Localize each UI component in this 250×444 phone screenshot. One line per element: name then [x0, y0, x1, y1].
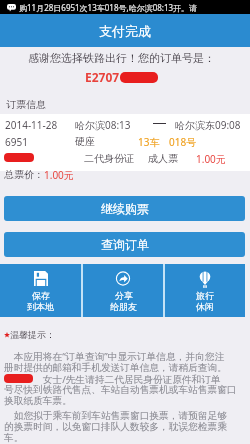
- staticText: 分享: [115, 290, 133, 301]
- staticText: 订票信息: [6, 98, 46, 111]
- staticText: 哈尔滨东09:08: [175, 118, 241, 132]
- staticText: 018号: [169, 135, 197, 149]
- staticText: 休闲: [196, 301, 214, 312]
- staticText: 本应用将在“订单查询”中显示订单信息，并向您注 册时提供的邮箱和手机发送订单信息…: [4, 350, 248, 407]
- staticText: 继续购票: [101, 201, 149, 216]
- staticText: 哈尔滨08:13: [75, 118, 131, 132]
- staticText: 硬座: [75, 135, 95, 148]
- staticText: 成人票: [148, 152, 178, 165]
- staticText: 购11月28日6951次13车018号,哈尔滨08:13开。请: [19, 2, 198, 13]
- staticText: E2707: [85, 69, 120, 85]
- staticText: 13车: [138, 135, 160, 149]
- staticText: 到本地: [27, 301, 54, 312]
- button[interactable]: 保存到本地: [0, 264, 81, 317]
- staticText: 查询订单: [101, 237, 149, 252]
- staticText: 1.00元: [44, 168, 74, 182]
- staticText: 1.00元: [196, 152, 226, 166]
- staticText: 温馨提示：: [10, 329, 55, 340]
- staticText: 如您拟于乘车前到车站售票窗口换票，请预留足够 的换票时间，以免窗口排队人数较多，…: [4, 409, 248, 444]
- staticText: 总票价：: [4, 168, 44, 181]
- button[interactable]: 继续购票: [4, 196, 245, 221]
- staticText: 感谢您选择铁路出行！您的订单号是：: [28, 51, 215, 65]
- staticText: 6951: [5, 135, 28, 149]
- button[interactable]: 旅行休闲: [165, 264, 245, 317]
- staticText: 2014-11-28: [5, 118, 58, 132]
- staticText: 旅行: [196, 290, 214, 301]
- button[interactable]: 查询订单: [4, 232, 245, 257]
- staticText: 给朋友: [110, 301, 137, 312]
- staticText: 支付完成: [99, 23, 151, 39]
- staticText: 保存: [32, 290, 50, 301]
- button[interactable]: 分享给朋友: [83, 264, 163, 317]
- staticText: 二代身份证: [84, 152, 134, 165]
